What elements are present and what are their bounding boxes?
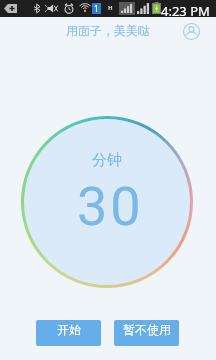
staticText: 暂不使用 [123,322,171,337]
staticText: H [108,4,113,12]
staticText: 30 [77,175,144,238]
staticText: 1 [94,3,99,14]
button[interactable]: Profile [183,23,200,40]
staticText: 开始 [57,322,81,337]
button[interactable]: 开始 [36,320,101,346]
staticText: 4:23 PM [161,2,210,19]
staticText: 分钟 [92,151,122,170]
button[interactable]: 暂不使用 [114,320,179,346]
staticText: 用面子，美美哒 [66,23,150,38]
